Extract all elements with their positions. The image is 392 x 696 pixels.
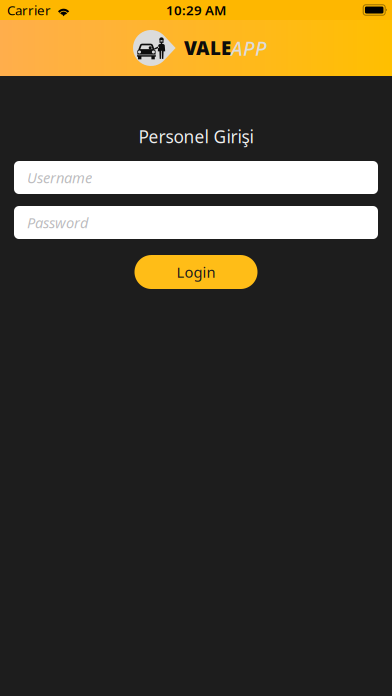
button[interactable]: Password: [14, 206, 378, 239]
staticText: 10:29 AM: [166, 1, 226, 19]
button[interactable]: Login: [134, 255, 257, 289]
staticText: Password: [27, 213, 88, 232]
staticText: VALE: [184, 36, 231, 60]
staticText: Username: [27, 168, 92, 187]
staticText: APP: [231, 35, 267, 61]
staticText: Personel Girişi: [138, 125, 253, 148]
button[interactable]: Username: [14, 161, 378, 194]
staticText: Carrier: [7, 1, 51, 19]
staticText: Login: [176, 262, 215, 282]
